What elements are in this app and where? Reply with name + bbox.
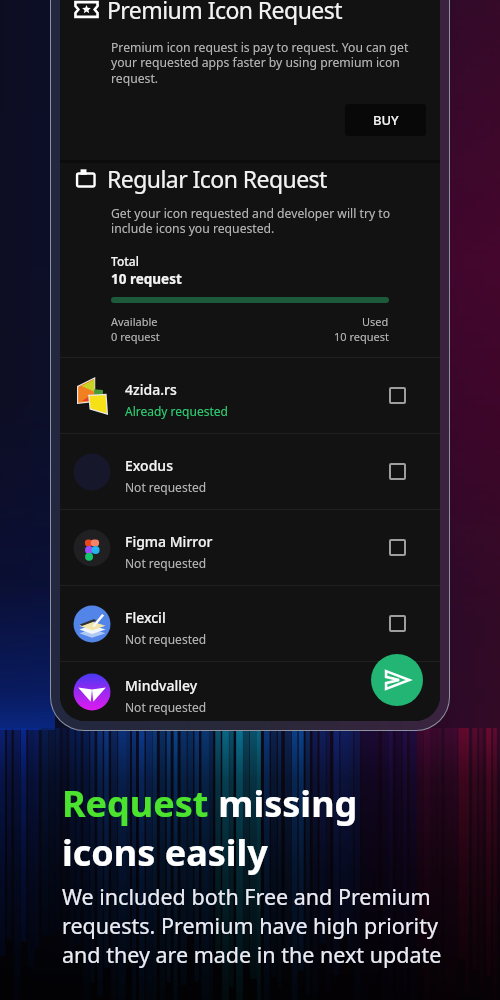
staticText: Get your icon requested and developer wi… — [111, 205, 418, 237]
staticText: Flexcil — [125, 608, 166, 627]
staticText: Regular Icon Request — [107, 163, 327, 194]
staticText: 4zida.rs — [125, 380, 177, 399]
staticText: icons easily — [62, 828, 268, 877]
staticText: Not requested — [125, 699, 207, 715]
button[interactable]: Select Flexcil — [389, 615, 406, 632]
button[interactable]: Exodus — [60, 434, 440, 509]
staticText: Request — [62, 779, 209, 828]
staticText: Exodus — [125, 456, 173, 475]
button[interactable]: Figma Mirror — [60, 510, 440, 585]
button[interactable]: Select Exodus — [389, 463, 406, 480]
staticText: 10 request — [111, 270, 182, 288]
staticText: BUY — [373, 111, 399, 129]
staticText: Premium icon request is pay to request. … — [111, 39, 418, 87]
button[interactable]: Select 4zida.rs — [389, 387, 406, 404]
staticText: Not requested — [125, 631, 207, 647]
staticText: We included both Free and Premium reques… — [62, 882, 442, 969]
staticText: Not requested — [125, 555, 207, 571]
staticText: missing — [209, 779, 358, 828]
button[interactable]: 4zida.rs — [60, 358, 440, 433]
staticText: Not requested — [125, 479, 207, 495]
staticText: Already requested — [125, 403, 228, 419]
staticText: 0 request — [111, 329, 160, 344]
button[interactable]: BUY — [345, 104, 426, 136]
button[interactable]: Flexcil — [60, 586, 440, 661]
staticText: Total — [111, 253, 139, 269]
staticText: Available — [111, 314, 158, 329]
staticText: Used — [362, 314, 389, 329]
staticText: Premium Icon Request — [107, 0, 342, 25]
staticText: Figma Mirror — [125, 532, 213, 551]
button[interactable]: Send request — [371, 654, 423, 706]
button[interactable]: Select Mindvalley — [389, 683, 406, 700]
staticText: Mindvalley — [125, 676, 198, 695]
button[interactable]: Mindvalley — [60, 662, 440, 721]
staticText: 10 request — [334, 329, 389, 344]
button[interactable]: Select Figma Mirror — [389, 539, 406, 556]
